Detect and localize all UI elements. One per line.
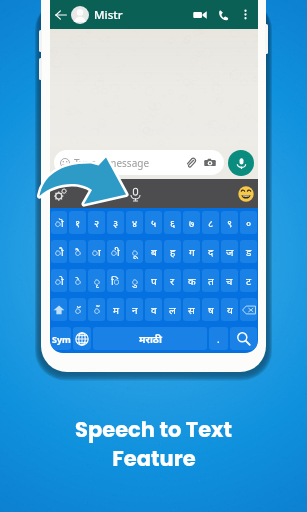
staticText: य — [227, 303, 233, 317]
button[interactable]: ॊ — [51, 211, 67, 234]
staticText: व — [151, 303, 157, 317]
button[interactable]: ८ — [202, 211, 219, 234]
staticText: ७ — [189, 216, 195, 230]
staticText: ५ — [151, 216, 157, 230]
button[interactable]: ॅ — [69, 298, 86, 321]
staticText: ष — [208, 303, 214, 317]
staticText: स — [188, 303, 195, 317]
button[interactable]: Type a message — [54, 150, 224, 175]
staticText: ा — [92, 245, 101, 259]
button[interactable]: ष — [202, 298, 219, 321]
staticText: द — [208, 245, 214, 259]
button[interactable]: २ — [88, 211, 105, 234]
button[interactable]: क — [183, 269, 200, 292]
button[interactable]: Voice input — [126, 185, 144, 203]
button[interactable]: ब — [145, 240, 162, 263]
button[interactable]: प — [145, 269, 162, 292]
staticText: ल — [169, 303, 176, 317]
staticText: ग — [189, 245, 195, 259]
button[interactable]: Sym — [51, 327, 71, 350]
staticText: ० — [246, 216, 252, 230]
button[interactable]: . — [209, 327, 228, 350]
button[interactable]: द — [202, 240, 219, 263]
button[interactable]: ६ — [164, 211, 181, 234]
button[interactable]: Video call — [192, 7, 208, 23]
button[interactable]: Record voice message — [228, 150, 254, 176]
button[interactable]: ो — [51, 269, 67, 292]
button[interactable]: Back — [53, 7, 69, 23]
button[interactable]: ँ — [88, 298, 105, 321]
button[interactable]: Change language — [73, 327, 91, 350]
button[interactable]: य — [221, 298, 238, 321]
button[interactable]: Voice call — [216, 8, 230, 22]
button[interactable]: ० — [240, 211, 257, 234]
button[interactable]: ९ — [221, 211, 238, 234]
staticText: र — [170, 274, 175, 288]
staticText: ॊ — [55, 216, 64, 230]
staticText: क — [188, 274, 196, 288]
button[interactable]: ू — [126, 240, 143, 263]
button[interactable]: ५ — [145, 211, 162, 234]
button[interactable]: म — [107, 298, 124, 321]
staticText: ड — [246, 245, 252, 259]
staticText: ौ — [55, 245, 64, 259]
staticText: ८ — [208, 216, 214, 230]
button[interactable]: ह — [164, 240, 181, 263]
staticText: च — [226, 274, 233, 288]
staticText: ो — [55, 274, 64, 288]
staticText: मराठी — [139, 332, 162, 346]
button[interactable]: व — [145, 298, 162, 321]
staticText: Mistr — [94, 7, 123, 23]
staticText: ि — [111, 274, 120, 288]
button[interactable]: Emoji — [237, 185, 254, 202]
button[interactable]: ट — [240, 269, 257, 292]
staticText: ह — [170, 245, 176, 259]
staticText: ु — [132, 274, 138, 288]
button[interactable]: ौ — [51, 240, 67, 263]
button[interactable]: More options — [239, 8, 252, 21]
staticText: ँ — [94, 303, 100, 317]
button[interactable]: ि — [107, 269, 124, 292]
button[interactable]: मराठी — [93, 327, 207, 350]
button[interactable]: Search — [230, 327, 257, 350]
button[interactable]: स — [183, 298, 200, 321]
staticText: Sym — [52, 333, 71, 345]
staticText: ी — [111, 245, 120, 259]
staticText: २ — [94, 216, 100, 230]
button[interactable]: च — [221, 269, 238, 292]
staticText: प — [151, 274, 157, 288]
staticText: त — [208, 274, 214, 288]
button[interactable]: त — [202, 269, 219, 292]
staticText: . — [217, 332, 220, 346]
staticText: ४ — [132, 216, 138, 230]
button[interactable]: ग — [183, 240, 200, 263]
button[interactable]: ड — [240, 240, 257, 263]
button[interactable]: ४ — [126, 211, 143, 234]
staticText: १ — [75, 216, 81, 230]
staticText: ै — [75, 245, 81, 259]
button[interactable]: ७ — [183, 211, 200, 234]
button[interactable]: Backspace — [240, 298, 257, 321]
button[interactable]: ै — [69, 240, 86, 263]
staticText: ६ — [170, 216, 176, 230]
staticText: ॅ — [75, 303, 81, 317]
button[interactable]: ी — [107, 240, 124, 263]
button[interactable]: ा — [88, 240, 105, 263]
button[interactable]: Shift — [51, 298, 67, 321]
staticText: ज — [226, 245, 234, 259]
staticText: Speech to Text — [75, 415, 232, 444]
button[interactable]: न — [126, 298, 143, 321]
staticText: ृ — [94, 274, 100, 288]
staticText: Type a message — [74, 156, 150, 170]
button[interactable]: Keyboard settings — [52, 185, 70, 203]
button[interactable]: ु — [126, 269, 143, 292]
button[interactable]: ३ — [107, 211, 124, 234]
staticText: म — [113, 303, 119, 317]
button[interactable]: ज — [221, 240, 238, 263]
button[interactable]: १ — [69, 211, 86, 234]
button[interactable]: ृ — [88, 269, 105, 292]
button[interactable]: ल — [164, 298, 181, 321]
button[interactable]: े — [69, 269, 86, 292]
button[interactable]: र — [164, 269, 181, 292]
staticText: े — [75, 274, 81, 288]
